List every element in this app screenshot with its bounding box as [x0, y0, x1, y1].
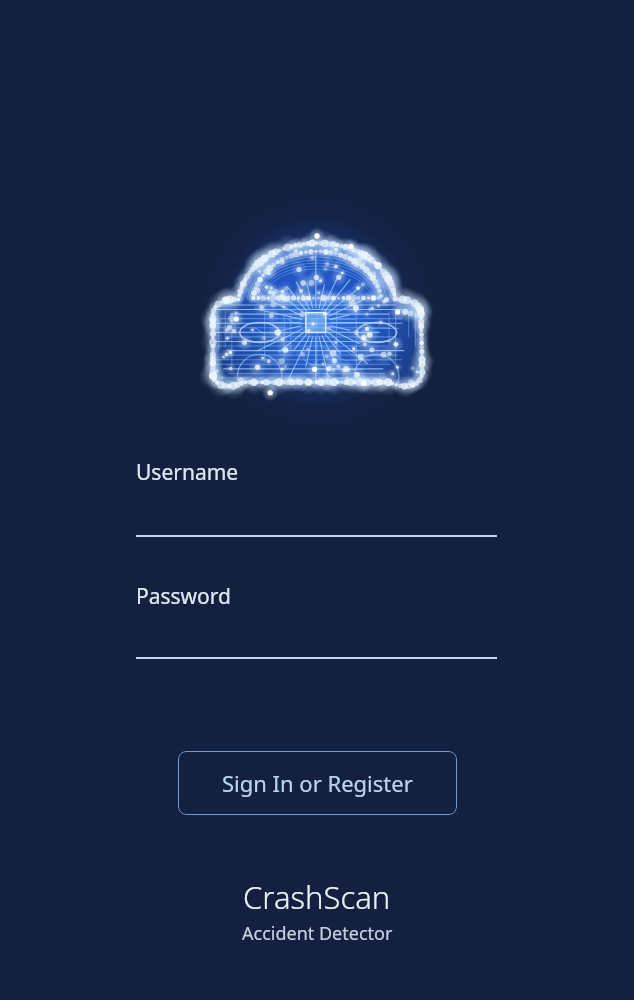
staticText: Sign In or Register: [222, 768, 413, 798]
other: CrashScan logo: [200, 195, 434, 429]
staticText: CrashScan: [243, 876, 391, 918]
button[interactable]: Password: [136, 582, 497, 659]
button[interactable]: Sign In or Register: [178, 751, 457, 815]
staticText: Username: [136, 458, 239, 487]
button[interactable]: Username: [136, 458, 497, 537]
staticText: Accident Detector: [242, 921, 393, 946]
staticText: Password: [136, 582, 231, 611]
